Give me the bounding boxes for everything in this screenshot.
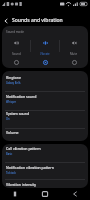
staticText: Volume <box>6 130 19 135</box>
staticText: Ticktock <box>6 171 16 175</box>
staticText: Basic <box>6 152 13 156</box>
staticText: Mute <box>70 52 78 56</box>
button[interactable]: Vibration intensity <box>2 180 88 188</box>
staticText: Call vibration pattern <box>6 146 41 151</box>
staticText: Ringtone <box>6 75 21 80</box>
button[interactable]: Volume <box>2 129 88 141</box>
staticText: Notification sound <box>6 94 37 99</box>
button[interactable]: Home <box>30 188 60 200</box>
button[interactable]: Vibrate <box>31 26 59 68</box>
staticText: Vibrate <box>40 52 50 56</box>
staticText: Whisper <box>6 100 17 104</box>
button[interactable]: Sound <box>2 26 30 68</box>
button[interactable]: Mute <box>60 26 88 68</box>
staticText: Vibration intensity <box>6 182 36 187</box>
button[interactable]: System sound <box>2 111 88 128</box>
staticText: Sound <box>12 52 21 56</box>
staticText: Notification vibration pattern <box>6 165 54 170</box>
staticText: On <box>6 117 10 121</box>
staticText: Sounds and vibration <box>12 17 63 24</box>
button[interactable]: Recent apps <box>0 188 30 200</box>
button[interactable]: Call vibration pattern <box>2 144 88 162</box>
staticText: Sound mode <box>6 30 24 34</box>
button[interactable]: Back <box>60 188 90 200</box>
staticText: System sound <box>6 111 30 116</box>
button[interactable]: Notification sound <box>2 92 88 110</box>
button[interactable]: Back <box>0 15 11 26</box>
button[interactable]: Notification vibration pattern <box>2 163 88 179</box>
button[interactable]: Ringtone <box>2 71 88 91</box>
staticText: Galaxy Bells <box>6 81 21 85</box>
